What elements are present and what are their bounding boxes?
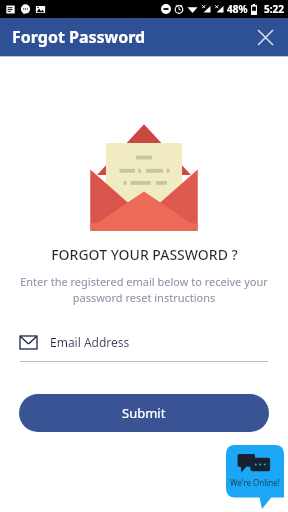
staticText: Submit <box>122 404 166 422</box>
button[interactable]: Close <box>250 22 280 52</box>
staticText: Forgot Password <box>12 26 146 48</box>
staticText: 48% <box>227 2 248 16</box>
staticText: We're Online! <box>230 477 280 488</box>
staticText: FORGOT YOUR PASSWORD ? <box>51 245 238 264</box>
staticText: Email Address <box>50 334 130 350</box>
button[interactable]: Email Address <box>20 334 268 362</box>
button[interactable]: Submit <box>19 394 269 432</box>
staticText: 5:22 <box>264 2 284 16</box>
staticText: Enter the registered email below to rece… <box>12 274 276 306</box>
button[interactable]: We're Online chat <box>226 445 284 509</box>
